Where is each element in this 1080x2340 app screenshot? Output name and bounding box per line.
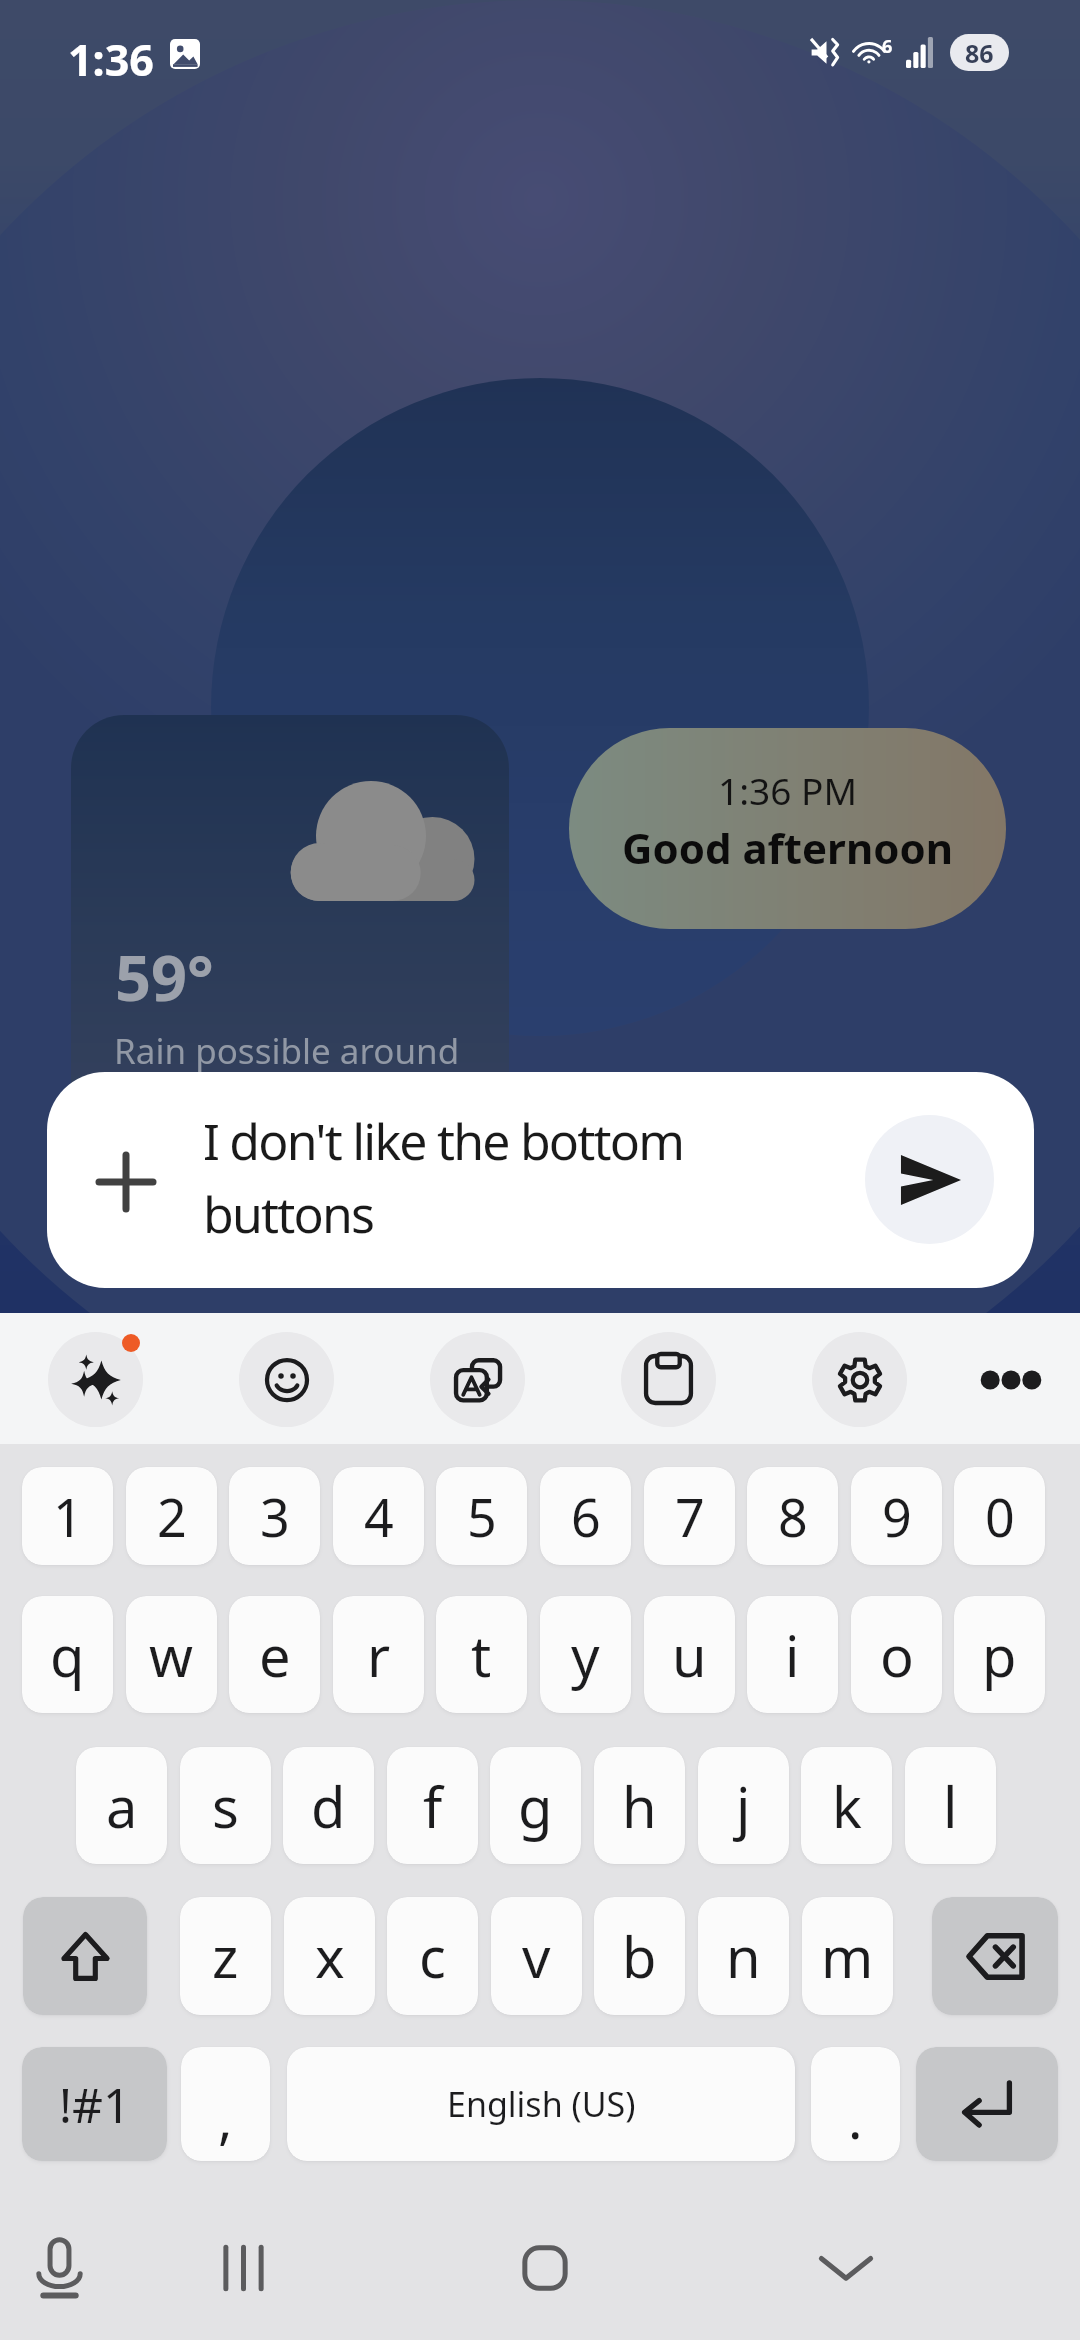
button[interactable]: English (US): [287, 2047, 795, 2161]
button[interactable]: Add: [66, 1122, 186, 1242]
staticText: g: [518, 1768, 553, 1844]
staticText: a: [106, 1768, 138, 1844]
button[interactable]: d: [283, 1747, 374, 1864]
button[interactable]: 8: [747, 1467, 838, 1565]
button[interactable]: w: [126, 1596, 217, 1713]
staticText: English (US): [447, 2081, 636, 2127]
button[interactable]: AI suggestions: [48, 1332, 143, 1427]
button[interactable]: Recents: [193, 2218, 293, 2318]
button[interactable]: 0: [954, 1467, 1045, 1565]
staticText: 59°: [115, 934, 214, 1020]
button[interactable]: Hide keyboard: [796, 2218, 896, 2318]
button[interactable]: Send: [865, 1115, 994, 1244]
button[interactable]: Enter: [916, 2047, 1058, 2161]
button[interactable]: n: [698, 1897, 789, 2015]
staticText: y: [571, 1617, 600, 1693]
button[interactable]: m: [802, 1897, 893, 2015]
staticText: u: [672, 1617, 707, 1693]
button[interactable]: f: [387, 1747, 478, 1864]
button[interactable]: 2: [126, 1467, 217, 1565]
button[interactable]: 3: [229, 1467, 320, 1565]
button[interactable]: .: [811, 2047, 900, 2161]
staticText: e: [259, 1617, 291, 1693]
staticText: !#1: [59, 2072, 131, 2137]
staticText: 4: [364, 1481, 394, 1552]
button[interactable]: z: [180, 1897, 271, 2015]
button[interactable]: 7: [644, 1467, 735, 1565]
button[interactable]: Home: [495, 2218, 595, 2318]
button[interactable]: e: [229, 1596, 320, 1713]
button[interactable]: More options: [963, 1332, 1058, 1427]
staticText: h: [622, 1768, 657, 1844]
staticText: v: [522, 1918, 551, 1994]
button[interactable]: o: [851, 1596, 942, 1713]
staticText: b: [622, 1918, 657, 1994]
staticText: I don't like the bottom buttons: [203, 1107, 723, 1247]
button[interactable]: t: [436, 1596, 527, 1713]
button[interactable]: p: [954, 1596, 1045, 1713]
button[interactable]: a: [76, 1747, 167, 1864]
button[interactable]: l: [905, 1747, 996, 1864]
staticText: r: [367, 1617, 391, 1693]
button[interactable]: Translate: [430, 1332, 525, 1427]
staticText: w: [149, 1617, 194, 1693]
staticText: 2: [157, 1481, 187, 1552]
staticText: l: [943, 1768, 958, 1844]
staticText: c: [419, 1918, 446, 1994]
staticText: .: [848, 2081, 863, 2155]
staticText: ,: [218, 2081, 233, 2155]
staticText: 86: [965, 36, 994, 70]
staticText: 1:36 PM: [569, 765, 1006, 815]
button[interactable]: ,: [181, 2047, 270, 2161]
button[interactable]: i: [747, 1596, 838, 1713]
button[interactable]: v: [491, 1897, 582, 2015]
staticText: n: [726, 1918, 761, 1994]
staticText: 1:36: [68, 30, 154, 89]
staticText: 1: [53, 1481, 83, 1552]
staticText: Good afternoon: [569, 819, 1006, 876]
staticText: 5: [467, 1481, 497, 1552]
staticText: 3: [260, 1481, 290, 1552]
button[interactable]: 4: [333, 1467, 424, 1565]
button[interactable]: Emoji: [239, 1332, 334, 1427]
button[interactable]: c: [387, 1897, 478, 2015]
staticText: 9: [882, 1481, 912, 1552]
staticText: d: [311, 1768, 346, 1844]
staticText: s: [212, 1768, 239, 1844]
button[interactable]: Clipboard: [621, 1332, 716, 1427]
staticText: 6: [882, 34, 893, 59]
staticText: j: [736, 1768, 751, 1844]
button[interactable]: 9: [851, 1467, 942, 1565]
button[interactable]: r: [333, 1596, 424, 1713]
staticText: i: [785, 1617, 800, 1693]
button[interactable]: s: [180, 1747, 271, 1864]
button[interactable]: 59°: [71, 715, 509, 1153]
button[interactable]: g: [490, 1747, 581, 1864]
button[interactable]: x: [284, 1897, 375, 2015]
button[interactable]: b: [594, 1897, 685, 2015]
staticText: 0: [985, 1481, 1015, 1552]
staticText: k: [832, 1768, 862, 1844]
button[interactable]: !#1: [22, 2047, 167, 2161]
button[interactable]: Shift: [23, 1897, 147, 2015]
staticText: m: [821, 1918, 874, 1994]
staticText: q: [50, 1617, 85, 1693]
button[interactable]: u: [644, 1596, 735, 1713]
button[interactable]: k: [801, 1747, 892, 1864]
staticText: o: [880, 1617, 914, 1693]
staticText: 6: [571, 1481, 601, 1552]
button[interactable]: h: [594, 1747, 685, 1864]
button[interactable]: y: [540, 1596, 631, 1713]
button[interactable]: Backspace: [932, 1897, 1058, 2015]
staticText: z: [212, 1918, 239, 1994]
button[interactable]: 6: [540, 1467, 631, 1565]
staticText: f: [423, 1768, 443, 1844]
button[interactable]: j: [698, 1747, 789, 1864]
button[interactable]: 5: [436, 1467, 527, 1565]
button[interactable]: Keyboard settings: [812, 1332, 907, 1427]
button[interactable]: q: [22, 1596, 113, 1713]
button[interactable]: 1: [22, 1467, 113, 1565]
button[interactable]: 1:36 PM: [569, 728, 1006, 929]
button[interactable]: Voice input: [9, 2218, 109, 2318]
staticText: t: [471, 1617, 492, 1693]
